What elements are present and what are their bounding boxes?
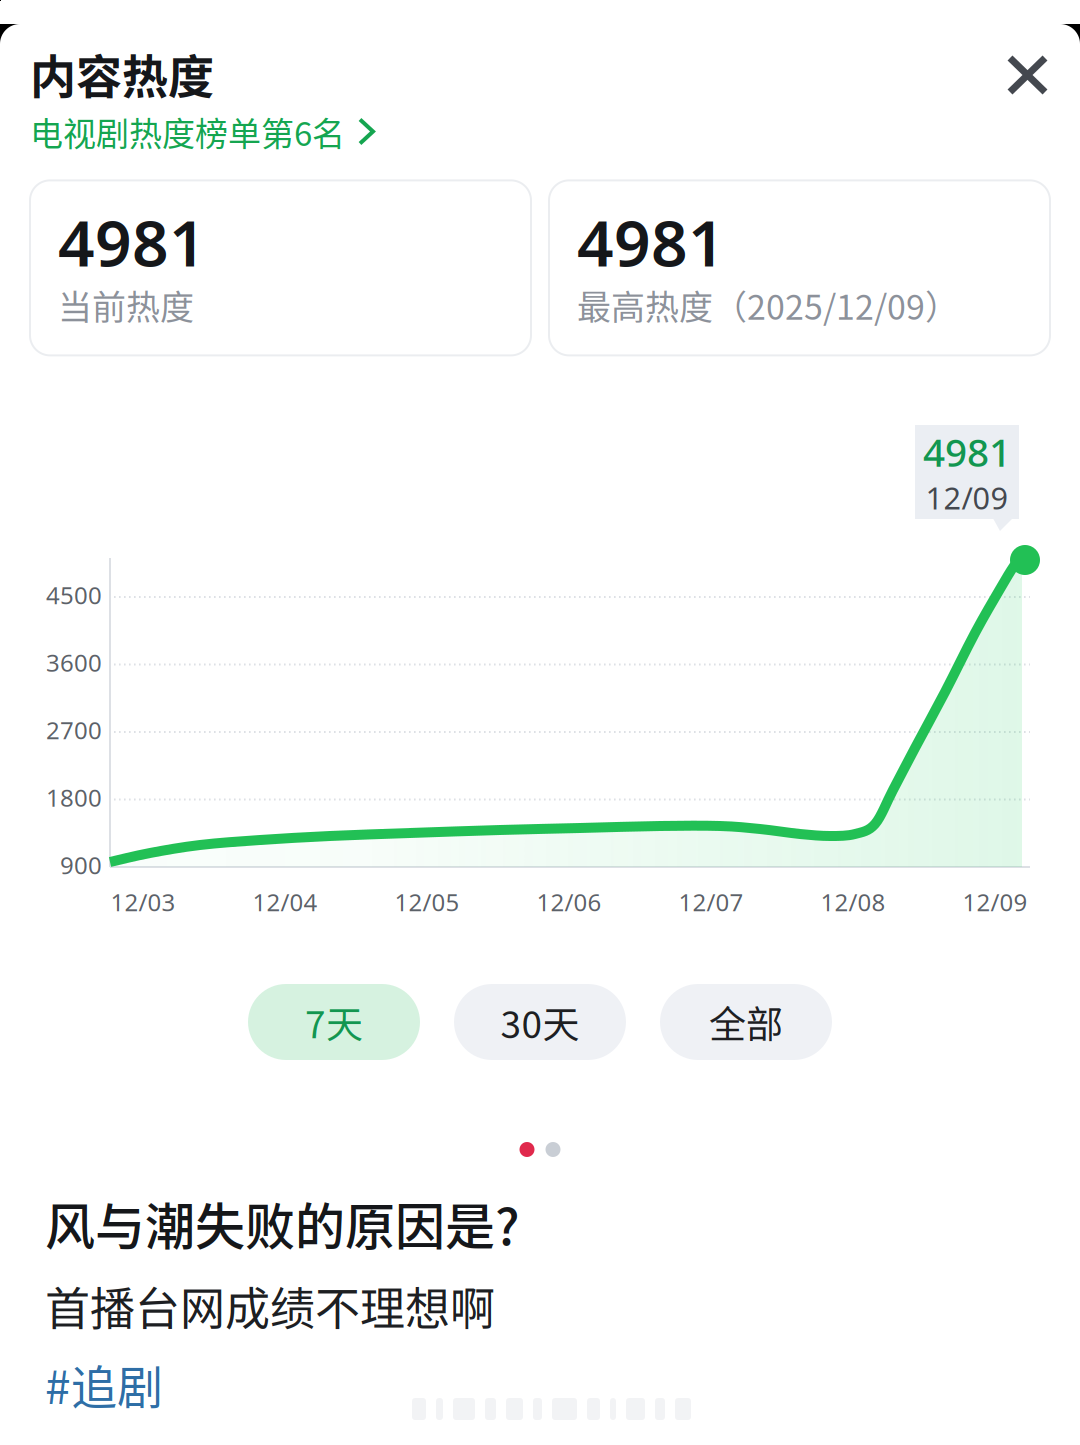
staticText: 4500 [46,579,102,611]
staticText: 12/06 [536,886,601,918]
button[interactable]: 7天 [248,984,420,1060]
staticText: 内容热度 [30,40,214,107]
staticText: 2700 [46,714,102,746]
staticText: 12/05 [394,886,459,918]
staticText: 4981 [58,199,206,284]
staticText: 首播台网成绩不理想啊 [45,1273,495,1339]
staticText: 7天 [305,995,363,1049]
staticText: 当前热度 [58,280,194,329]
staticText: 4981 [923,426,1011,477]
staticText: 12/07 [678,886,743,918]
staticText: 风与潮失败的原因是? [45,1187,520,1259]
staticText: 12/04 [252,886,317,918]
staticText: 4981 [577,199,725,284]
staticText: 全部 [709,995,783,1049]
staticText: 最高热度（2025/12/09） [577,280,959,329]
button[interactable]: 全部 [660,984,832,1060]
staticText: 12/03 [110,886,175,918]
staticText: 12/09 [962,886,1027,918]
staticText: 12/08 [820,886,885,918]
staticText: 30天 [500,995,579,1049]
button[interactable]: Close [988,40,1062,118]
staticText: #追剧 [45,1351,163,1417]
staticText: 900 [60,849,102,881]
button[interactable]: 电视剧热度榜单第6名 [30,108,374,155]
staticText: 12/09 [925,477,1008,518]
button[interactable]: 30天 [454,984,626,1060]
staticText: 电视剧热度榜单第6名 [30,108,345,155]
staticText: 1800 [46,781,102,813]
staticText: 3600 [46,646,102,678]
button[interactable]: #追剧 [45,1351,163,1417]
